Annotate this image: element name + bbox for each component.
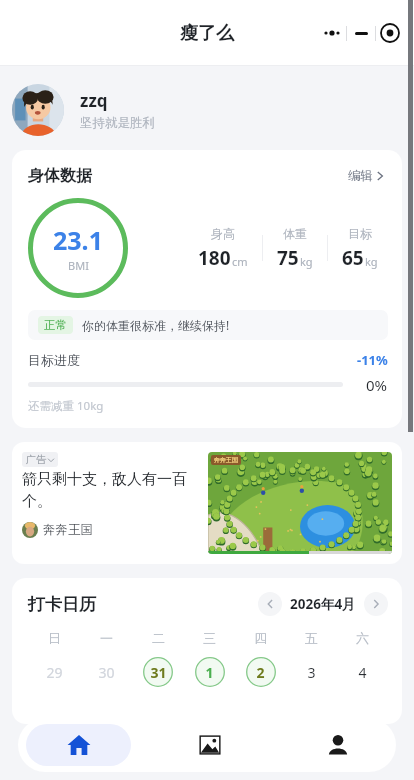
staticText: 打卡日历 [28,594,96,615]
staticText: 31 [150,663,167,682]
button[interactable]: 编辑 [344,164,388,188]
staticText: 正常 [44,318,67,332]
button[interactable]: 1 [184,656,235,688]
button[interactable]: 2 [235,656,286,688]
staticText: -11% [357,351,388,369]
staticText: 坚持就是胜利 [80,115,155,131]
button[interactable]: zzq [12,84,402,136]
button[interactable]: Previous month [258,592,282,616]
button[interactable]: Home [26,724,131,766]
staticText: 75 [277,245,299,271]
button[interactable]: 广告 [12,442,402,564]
staticText: 1 [205,663,214,682]
button[interactable]: 4 [337,656,388,688]
staticText: 广告 [26,453,46,466]
staticText: 30 [98,663,115,682]
staticText: 三 [203,630,216,646]
staticText: 奔奔王国 [214,456,238,464]
button[interactable]: 30 [80,656,132,688]
staticText: 还需减重 10kg [28,398,104,414]
staticText: 身高 [211,226,235,241]
staticText: BMI [68,258,89,273]
staticText: 四 [254,630,267,646]
staticText: 六 [356,630,369,646]
staticText: cm [232,254,248,269]
staticText: 体重 [283,226,307,241]
staticText: 29 [46,663,63,682]
button[interactable]: Next month [364,592,388,616]
button[interactable]: Profile [288,724,388,766]
staticText: 奔奔王国 [43,522,93,538]
staticText: 2026年4月 [290,595,356,613]
button[interactable]: More [317,17,346,49]
staticText: zzq [80,89,108,112]
staticText: 编辑 [348,168,373,184]
staticText: 日 [48,630,61,646]
staticText: 目标 [348,226,372,241]
staticText: 65 [342,245,364,271]
staticText: 0% [366,375,388,393]
button[interactable]: 31 [132,656,184,688]
button[interactable]: Gallery [160,724,260,766]
staticText: kg [300,254,313,269]
staticText: 你的体重很标准，继续保持! [82,317,230,333]
staticText: 3 [307,663,316,682]
staticText: 一 [100,630,113,646]
staticText: kg [365,254,378,269]
button[interactable]: 3 [286,656,337,688]
staticText: 二 [152,630,165,646]
staticText: 4 [358,663,367,682]
button[interactable]: Close [376,17,404,49]
staticText: 五 [305,630,318,646]
staticText: 箭只剩十支，敌人有一百个。 [22,470,198,511]
staticText: 瘦了么 [180,22,234,45]
staticText: 180 [198,245,231,271]
button[interactable]: 29 [28,656,80,688]
staticText: 23.1 [53,223,103,257]
staticText: 目标进度 [28,352,80,368]
staticText: 身体数据 [28,166,92,186]
button[interactable]: Minimize [347,17,375,49]
staticText: 2 [256,663,265,682]
